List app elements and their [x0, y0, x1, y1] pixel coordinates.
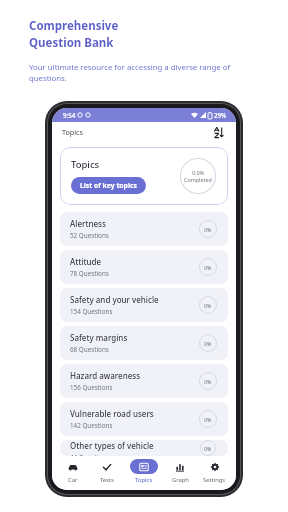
staticText: 9:54 — [63, 111, 76, 119]
staticText: 156 Questions — [70, 383, 113, 392]
staticText: Hazard awareness — [70, 370, 141, 381]
button[interactable]: Sort alphabetically — [212, 124, 228, 140]
button[interactable]: Other types of vehicle — [60, 440, 228, 456]
button[interactable]: Hazard awareness — [60, 364, 228, 398]
staticText: List of key topics — [80, 181, 137, 190]
staticText: 142 Questions — [70, 421, 113, 430]
button[interactable]: Attitude — [60, 250, 228, 284]
button[interactable]: List of key topics — [71, 177, 146, 194]
staticText: Comprehensive — [29, 18, 119, 34]
button[interactable]: Safety margins — [60, 326, 228, 360]
staticText: Question Bank — [29, 35, 114, 51]
staticText: Tests — [100, 476, 114, 484]
staticText: 0% — [204, 378, 212, 385]
staticText: Graph — [172, 476, 189, 484]
staticText: Your ultimate resource for accessing a d… — [29, 62, 231, 73]
staticText: Alertness — [70, 218, 106, 229]
staticText: 0% — [204, 226, 212, 233]
staticText: Safety and your vehicle — [70, 294, 159, 305]
button[interactable]: Alertness — [60, 212, 228, 246]
button[interactable]: Topics — [128, 459, 160, 484]
staticText: questions. — [29, 73, 67, 84]
staticText: Settings — [203, 476, 226, 484]
staticText: 0% — [204, 445, 212, 452]
staticText: Other types of vehicle — [70, 440, 154, 451]
staticText: 52 Questions — [70, 231, 109, 240]
staticText: Attitude — [70, 256, 102, 267]
button[interactable]: Settings — [201, 459, 228, 484]
button[interactable]: Car — [60, 459, 86, 484]
button[interactable]: Safety and your vehicle — [60, 288, 228, 322]
staticText: Car — [68, 476, 78, 484]
button[interactable]: Graph — [167, 459, 193, 484]
staticText: Safety margins — [70, 332, 128, 343]
button[interactable]: Tests — [94, 459, 120, 484]
staticText: 0% — [204, 340, 212, 347]
staticText: 154 Questions — [70, 307, 113, 316]
staticText: Topics — [135, 476, 153, 484]
staticText: Topics — [71, 158, 100, 171]
staticText: Topics — [62, 127, 84, 137]
staticText: Completed — [184, 176, 212, 183]
staticText: 44 Questions — [70, 453, 109, 456]
staticText: 0% — [204, 416, 212, 423]
staticText: 78 Questions — [70, 269, 109, 278]
staticText: 68 Questions — [70, 345, 109, 354]
button[interactable]: Vulnerable road users — [60, 402, 228, 436]
staticText: 0% — [204, 302, 212, 309]
staticText: 0% — [204, 264, 212, 271]
staticText: Vulnerable road users — [70, 408, 154, 419]
staticText: 29% — [214, 111, 227, 119]
staticText: 0.0% — [192, 169, 205, 176]
button[interactable]: Topics — [60, 147, 228, 205]
